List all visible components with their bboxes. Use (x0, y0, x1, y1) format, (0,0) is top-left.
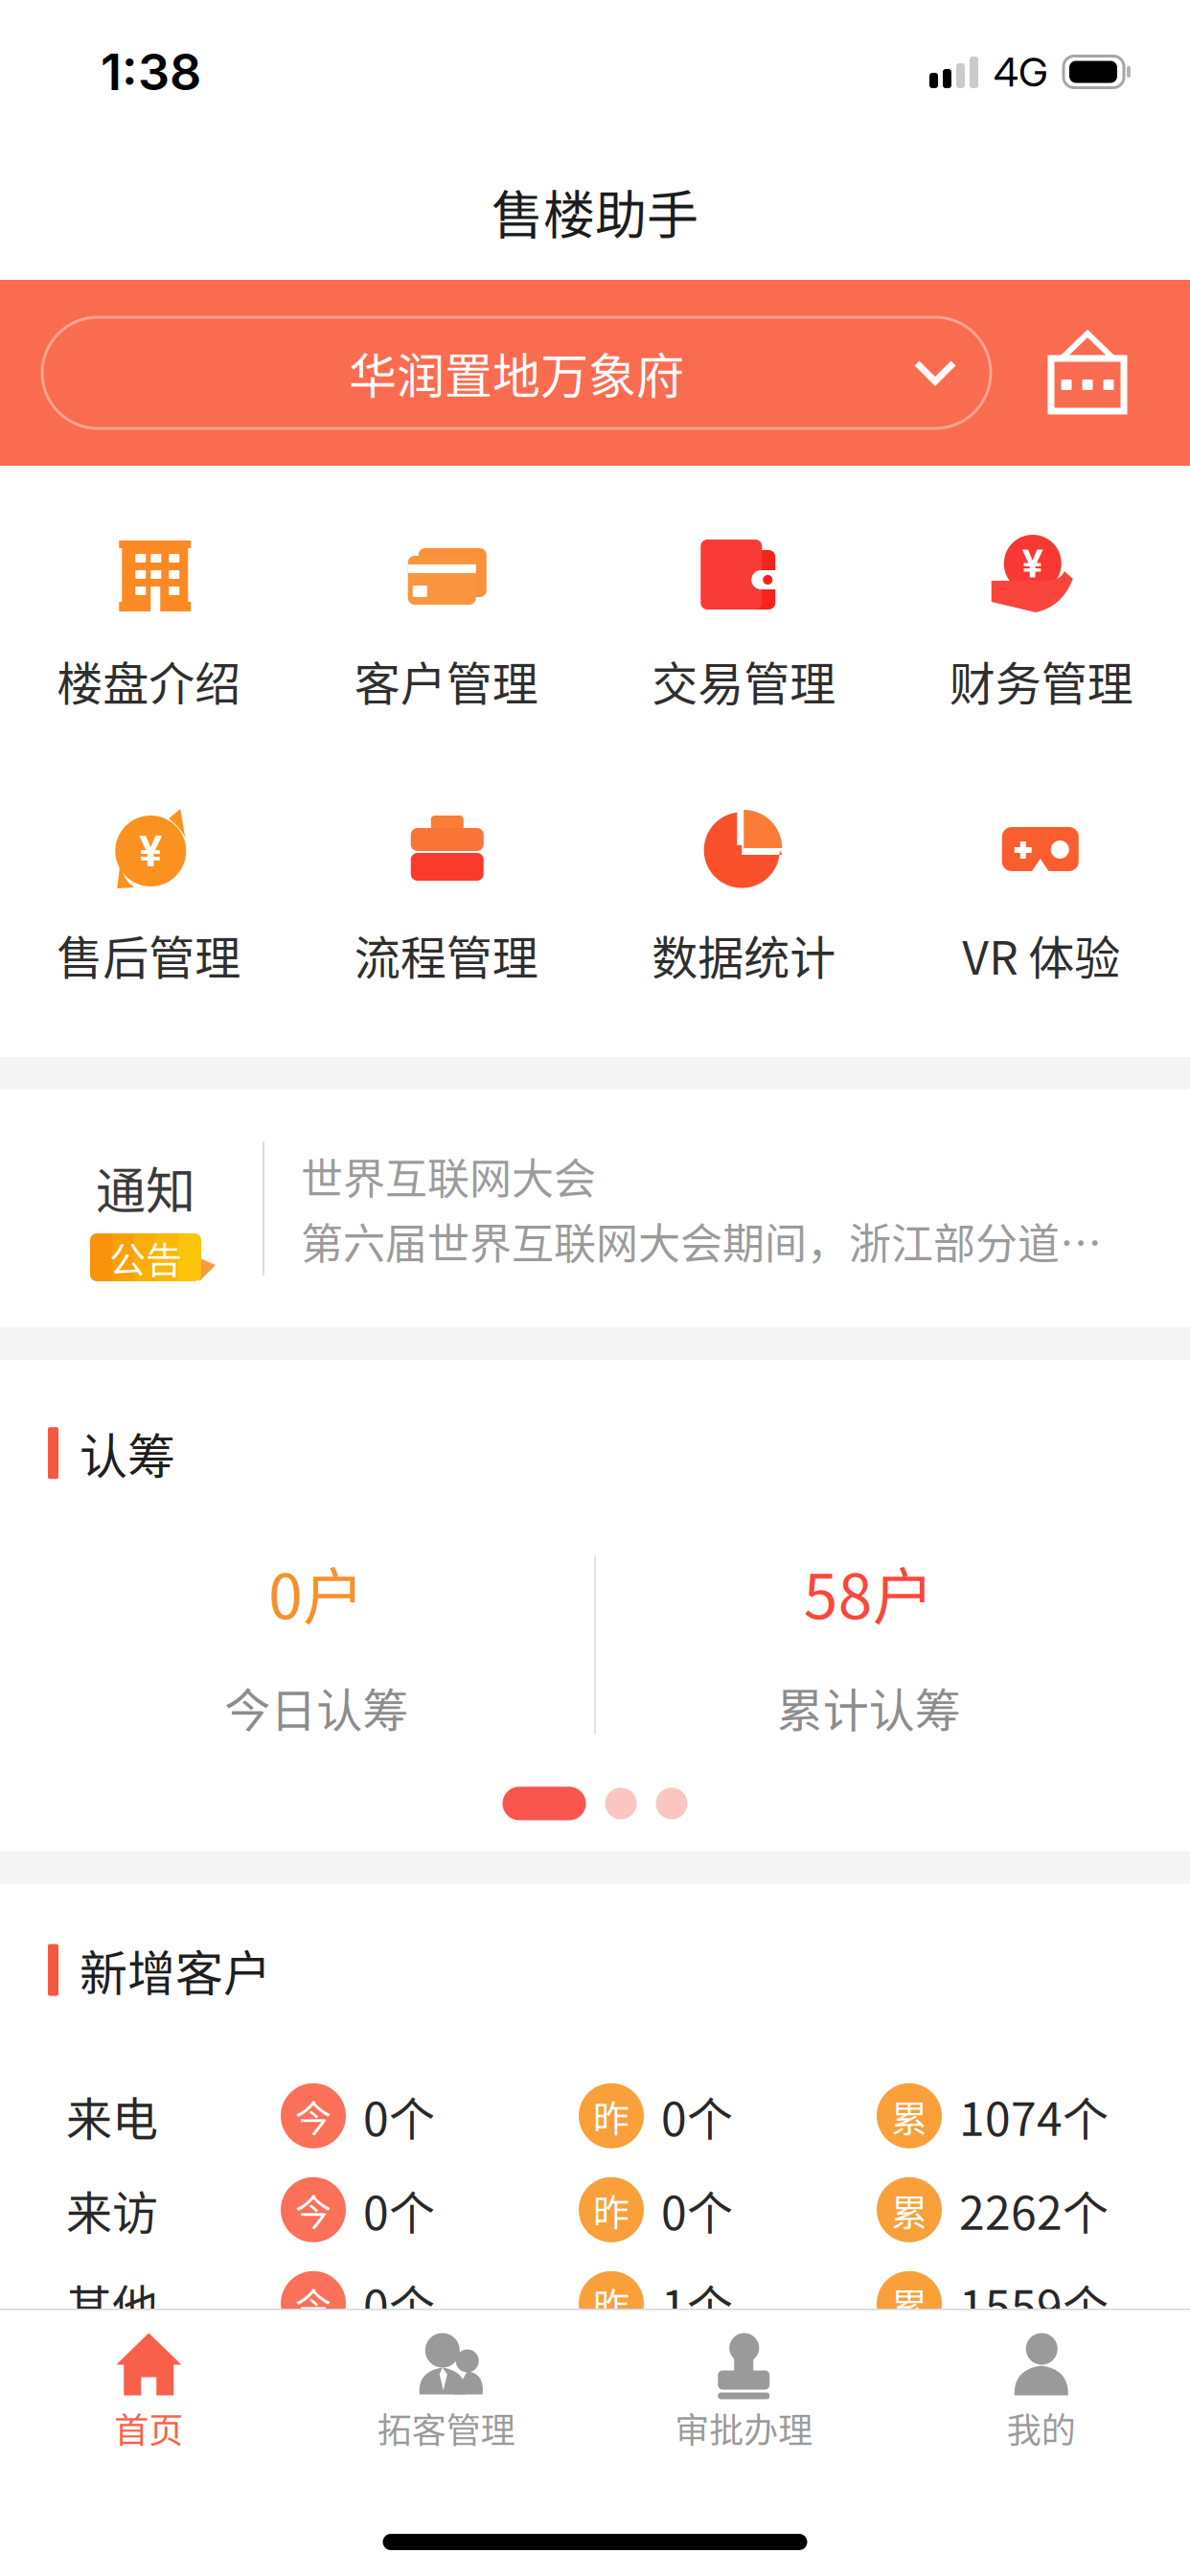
button[interactable]: VR 体验 (892, 808, 1190, 981)
staticText: 2262个 (959, 2176, 1109, 2243)
button[interactable]: 审批办理 (595, 2333, 892, 2450)
staticText: 0个 (363, 2270, 435, 2337)
button[interactable]: ¥ (892, 534, 1190, 707)
staticText: 1个 (661, 2270, 733, 2337)
button[interactable]: 项目看板 (991, 280, 1190, 466)
staticText: 售后管理 (57, 921, 241, 988)
staticText: 58户 (804, 1548, 934, 1637)
button[interactable]: 楼盘介绍 (0, 534, 297, 707)
button[interactable]: 流程管理 (297, 808, 595, 981)
staticText: 首页 (114, 2403, 183, 2453)
staticText: 世界互联网大会 (301, 1145, 596, 1207)
staticText: 累 (891, 2089, 927, 2142)
staticText: 1:38 (101, 42, 201, 102)
staticText: 楼盘介绍 (57, 647, 241, 714)
staticText: 累 (891, 2183, 927, 2236)
staticText: 今日认筹 (224, 1674, 408, 1740)
button[interactable]: 交易管理 (595, 534, 892, 707)
staticText: 数据统计 (652, 921, 836, 988)
staticText: 审批办理 (675, 2403, 813, 2453)
staticText: 累 (891, 2277, 927, 2330)
staticText: 交易管理 (652, 647, 836, 714)
staticText: 拓客管理 (377, 2403, 515, 2453)
button[interactable]: 数据统计 (595, 808, 892, 981)
staticText: 我的 (1007, 2403, 1076, 2453)
staticText: 今 (295, 2277, 332, 2330)
staticText: 今 (295, 2183, 332, 2236)
button[interactable]: 通知 (0, 1090, 1190, 1327)
staticText: 来访 (66, 2176, 158, 2243)
staticText: 华润置地万象府 (349, 338, 684, 407)
staticText: 流程管理 (354, 921, 538, 988)
button[interactable]: 拓客管理 (297, 2333, 595, 2450)
button[interactable]: ¥ (0, 808, 297, 981)
staticText: 4G (994, 48, 1048, 96)
staticText: 0户 (268, 1548, 364, 1637)
staticText: 昨 (593, 2089, 629, 2142)
staticText: 其他 (66, 2270, 158, 2337)
staticText: 0个 (363, 2082, 435, 2149)
button[interactable]: 我的 (892, 2333, 1190, 2450)
staticText: 1559个 (959, 2270, 1109, 2337)
button[interactable]: 华润置地万象府 (42, 317, 991, 428)
staticText: 售楼助手 (492, 174, 698, 249)
staticText: VR 体验 (962, 921, 1120, 988)
staticText: 通知 (96, 1151, 195, 1224)
staticText: 认筹 (80, 1418, 175, 1488)
staticText: 昨 (593, 2277, 629, 2330)
button[interactable]: 首页 (0, 2333, 297, 2450)
staticText: 客户管理 (354, 647, 538, 714)
staticText: 公告 (109, 1231, 182, 1284)
staticText: 1074个 (959, 2082, 1109, 2149)
staticText: 新增客户 (80, 1935, 271, 2005)
staticText: 财务管理 (949, 647, 1133, 714)
staticText: 0个 (661, 2082, 733, 2149)
staticText: 昨 (593, 2183, 629, 2236)
staticText: 第六届世界互联网大会期间，浙江部分道… (301, 1210, 1102, 1271)
button[interactable]: 客户管理 (297, 534, 595, 707)
staticText: 0个 (661, 2176, 733, 2243)
staticText: 累计认筹 (777, 1674, 961, 1740)
staticText: 来电 (66, 2082, 158, 2149)
staticText: ¥ (139, 826, 163, 876)
staticText: ¥ (1022, 540, 1043, 587)
staticText: 今 (295, 2089, 332, 2142)
staticText: 0个 (363, 2176, 435, 2243)
